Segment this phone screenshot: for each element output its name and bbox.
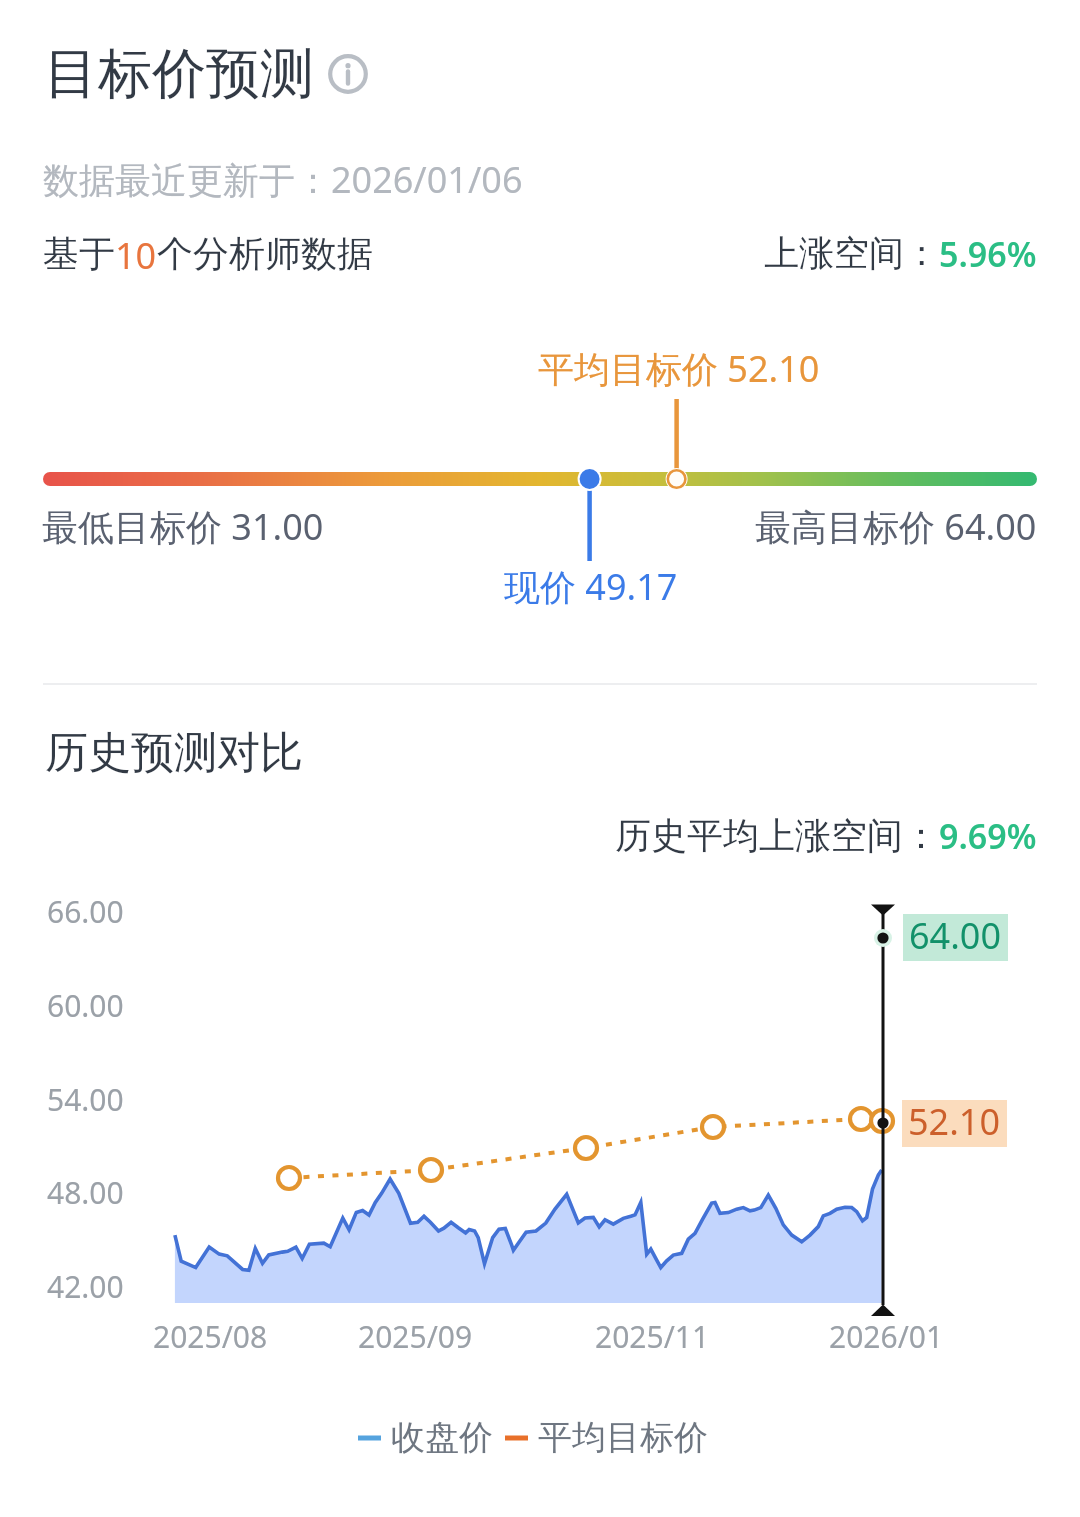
button[interactable]: 收盘价 <box>358 1416 493 1459</box>
staticText: 目标价预测 <box>44 40 314 106</box>
staticText: 54.00 <box>47 1079 124 1120</box>
staticText: 2025/08 <box>153 1316 268 1357</box>
staticText: 最高目标价 64.00 <box>755 502 1037 551</box>
staticText: 60.00 <box>47 985 124 1026</box>
staticText: 10 <box>115 231 157 280</box>
staticText: 66.00 <box>47 891 124 932</box>
staticText: 基于 <box>43 231 115 276</box>
staticText: 52.10 <box>908 1097 1001 1144</box>
staticText: 48.00 <box>47 1172 124 1213</box>
button[interactable]: 信息说明 <box>326 52 370 96</box>
staticText: 9.69% <box>939 813 1037 859</box>
staticText: 数据最近更新于：2026/01/06 <box>43 155 523 204</box>
staticText: 64.00 <box>909 911 1002 958</box>
staticText: 历史平均上涨空间： <box>615 813 939 858</box>
staticText: 2025/09 <box>358 1316 473 1357</box>
button[interactable]: 平均目标价 <box>505 1416 708 1459</box>
staticText: 历史预测对比 <box>45 726 303 780</box>
staticText: 平均目标价 <box>538 1416 708 1459</box>
staticText: 5.96% <box>939 231 1037 277</box>
staticText: 2025/11 <box>595 1316 710 1357</box>
staticText: 现价 49.17 <box>504 562 678 611</box>
staticText: 2026/01 <box>829 1316 944 1357</box>
staticText: 最低目标价 31.00 <box>42 502 324 551</box>
staticText: 上涨空间： <box>764 231 939 275</box>
staticText: 平均目标价 52.10 <box>538 344 820 393</box>
staticText: 收盘价 <box>391 1416 493 1459</box>
button[interactable]: 目标价预测 <box>44 40 314 106</box>
staticText: 42.00 <box>47 1266 124 1307</box>
staticText: 个分析师数据 <box>157 231 373 276</box>
